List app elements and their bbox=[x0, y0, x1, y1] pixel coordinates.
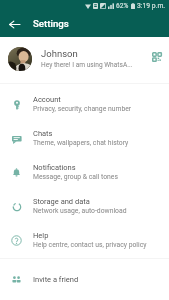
staticText: Theme, wallpapers, chat history bbox=[33, 139, 129, 147]
button[interactable]: Notifications bbox=[0, 155, 169, 189]
staticText: Chats bbox=[33, 129, 53, 138]
staticText: Settings bbox=[33, 18, 69, 29]
button[interactable]: Back bbox=[3, 13, 26, 36]
button[interactable]: Storage and data bbox=[0, 189, 169, 223]
staticText: Help bbox=[33, 231, 49, 240]
staticText: Account bbox=[33, 95, 61, 104]
button[interactable]: QR code bbox=[146, 46, 167, 67]
staticText: Invite a friend bbox=[33, 275, 79, 284]
staticText: Storage and data bbox=[33, 197, 90, 206]
staticText: Network usage, auto-download bbox=[33, 207, 127, 215]
button[interactable]: Help bbox=[0, 223, 169, 257]
button[interactable]: Johnson bbox=[0, 37, 169, 83]
staticText: 3:19 p.m. bbox=[137, 2, 166, 10]
staticText: 62% bbox=[116, 2, 129, 10]
button[interactable]: Invite a friend bbox=[0, 262, 169, 296]
button[interactable]: Account bbox=[0, 87, 169, 121]
staticText: Notifications bbox=[33, 163, 76, 172]
button[interactable]: Chats bbox=[0, 121, 169, 155]
staticText: Privacy, security, change number bbox=[33, 105, 132, 113]
staticText: Hey there! I am using WhatsA... bbox=[41, 61, 133, 69]
staticText: Johnson bbox=[41, 48, 78, 59]
staticText: Help centre, contact us, privacy policy bbox=[33, 241, 147, 249]
staticText: Message, group & call tones bbox=[33, 173, 118, 181]
